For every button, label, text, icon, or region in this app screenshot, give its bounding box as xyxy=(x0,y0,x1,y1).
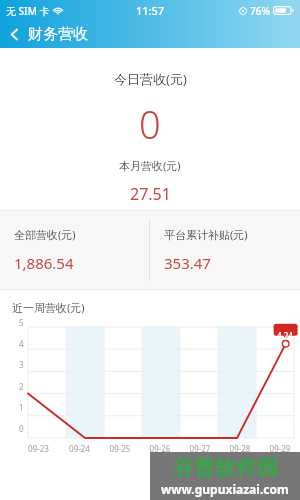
staticText: 09-28 xyxy=(220,443,260,454)
staticText: 27.51 xyxy=(130,183,171,205)
staticText: 无 SIM 卡 xyxy=(6,4,50,18)
staticText: 11:57 xyxy=(136,3,165,18)
staticText: 3 xyxy=(19,359,24,370)
staticText: 平台累计补贴(元) xyxy=(164,227,248,242)
button[interactable]: 全部营收(元) xyxy=(0,210,149,290)
staticText: 09-24 xyxy=(59,443,100,454)
staticText: 09-25 xyxy=(100,443,140,454)
staticText: 谷普软件园 xyxy=(173,455,278,481)
staticText: 09-26 xyxy=(140,443,180,454)
staticText: 财务营收 xyxy=(28,25,88,44)
staticText: 0 xyxy=(139,98,161,150)
staticText: 全部营收(元) xyxy=(14,227,76,242)
staticText: 09-23 xyxy=(18,443,59,454)
staticText: 4.24 xyxy=(277,330,293,341)
staticText: 2 xyxy=(19,381,24,392)
staticText: 0 xyxy=(19,423,24,434)
staticText: www.gupuxiazai.com xyxy=(161,481,289,497)
staticText: 4 xyxy=(19,338,24,349)
button[interactable]: Back xyxy=(0,21,28,48)
staticText: 1 xyxy=(19,402,24,413)
button[interactable]: 平台累计补贴(元) xyxy=(150,210,300,290)
staticText: 本月营收(元) xyxy=(119,158,181,173)
staticText: 76% xyxy=(250,4,270,18)
staticText: 今日营收(元) xyxy=(114,70,187,88)
staticText: 09-29 xyxy=(260,443,300,454)
staticText: 353.47 xyxy=(164,253,211,273)
staticText: 1,886.54 xyxy=(14,253,74,273)
staticText: 5 xyxy=(19,317,24,328)
staticText: 09-27 xyxy=(180,443,220,454)
staticText: 近一周营收(元) xyxy=(12,300,85,315)
